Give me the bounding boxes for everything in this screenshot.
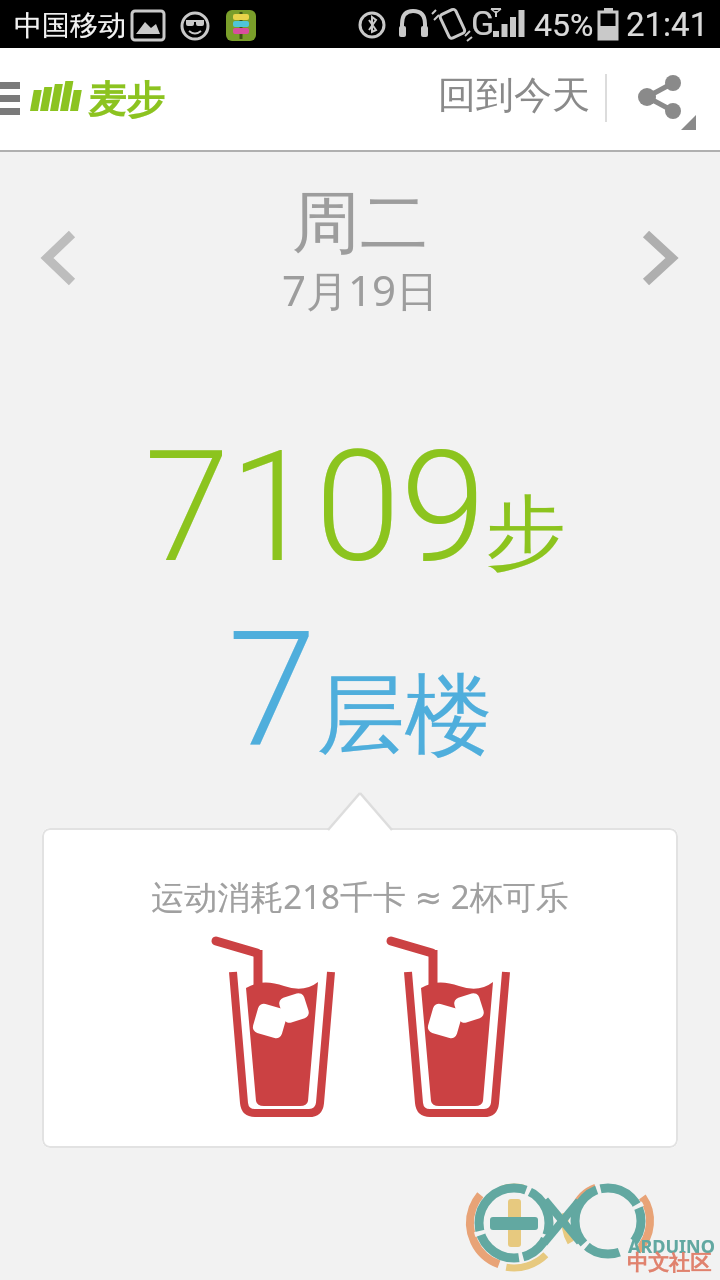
staticText: G — [471, 3, 495, 43]
button[interactable] — [630, 225, 690, 291]
staticText: 周二 — [0, 181, 720, 267]
staticText: 麦步 — [88, 76, 164, 124]
staticText: 7109步 — [0, 417, 715, 597]
button[interactable]: 回到今天 — [420, 58, 600, 142]
staticText: 7月19日 — [0, 261, 720, 318]
button[interactable] — [0, 72, 28, 132]
staticText: 21:41 — [626, 5, 709, 44]
staticText: 中文社区 — [627, 1250, 711, 1276]
staticText: 45% — [534, 6, 594, 44]
staticText: 7层楼 — [0, 597, 720, 785]
button[interactable] — [30, 225, 90, 291]
button[interactable] — [615, 63, 710, 143]
staticText: ARDUINO — [628, 1234, 715, 1259]
staticText: 运动消耗218千卡 ≈ 2杯可乐 — [0, 874, 720, 919]
staticText: 中国移动 — [14, 8, 126, 43]
button[interactable] — [42, 828, 678, 1148]
staticText: 回到今天 — [438, 71, 590, 119]
